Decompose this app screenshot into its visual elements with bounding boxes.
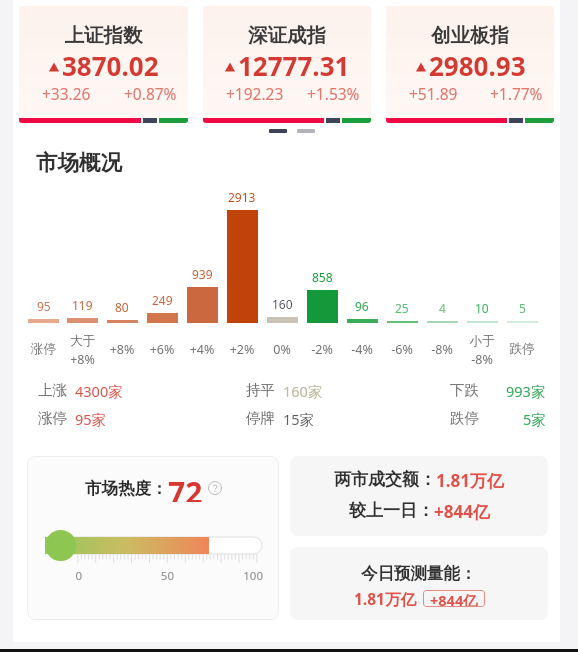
staticText: 0 bbox=[27, 568, 82, 584]
staticText: 小于 -8% bbox=[462, 333, 502, 365]
staticText: 大于 +8% bbox=[63, 333, 102, 365]
staticText: 249 bbox=[152, 292, 173, 308]
staticText: 25 bbox=[395, 300, 409, 316]
staticText: 5家 bbox=[523, 409, 546, 429]
staticText: -8% bbox=[422, 341, 462, 358]
staticText: 今日预测量能： bbox=[361, 563, 477, 584]
staticText: 160家 bbox=[283, 381, 323, 401]
staticText: 5 bbox=[519, 300, 526, 316]
staticText: 2913 bbox=[228, 189, 256, 205]
staticText: -6% bbox=[382, 341, 422, 358]
staticText: 12777.31 bbox=[238, 48, 350, 83]
staticText: 939 bbox=[192, 266, 213, 282]
staticText: 72 bbox=[168, 472, 203, 502]
staticText: +6% bbox=[142, 341, 182, 358]
staticText: 50 bbox=[82, 568, 174, 584]
staticText: +51.89 bbox=[409, 83, 458, 104]
staticText: +1.77% bbox=[490, 83, 543, 104]
staticText: +33.26 bbox=[42, 83, 91, 104]
staticText: +8% bbox=[102, 341, 142, 358]
staticText: 市场概况 bbox=[36, 149, 122, 176]
staticText: +2% bbox=[222, 341, 262, 358]
staticText: 涨停 bbox=[24, 341, 63, 357]
staticText: 160 bbox=[272, 296, 293, 312]
staticText: 95 bbox=[37, 298, 51, 314]
staticText: 15家 bbox=[283, 409, 315, 429]
staticText: +4% bbox=[182, 341, 222, 358]
staticText: 993家 bbox=[506, 381, 546, 401]
staticText: 跌停 bbox=[450, 409, 479, 427]
staticText: 100 bbox=[174, 568, 263, 584]
staticText: 96 bbox=[355, 298, 369, 314]
staticText: +1.53% bbox=[307, 83, 360, 104]
staticText: 80 bbox=[115, 299, 129, 315]
staticText: 停牌 bbox=[246, 409, 275, 427]
staticText: 下跌 bbox=[450, 381, 479, 399]
staticText: 2980.93 bbox=[429, 48, 526, 83]
staticText: +844亿 bbox=[434, 500, 490, 523]
staticText: 上涨 bbox=[38, 381, 67, 399]
staticText: 上证指数 bbox=[19, 23, 188, 48]
staticText: 119 bbox=[72, 297, 93, 313]
staticText: +192.23 bbox=[226, 83, 284, 104]
staticText: 1.81万亿 bbox=[354, 588, 416, 609]
staticText: 创业板指 bbox=[386, 23, 554, 48]
button[interactable]: 市场热度： bbox=[27, 456, 279, 620]
staticText: +844亿 bbox=[430, 590, 478, 607]
staticText: 涨停 bbox=[38, 409, 67, 427]
button[interactable]: 深证成指 bbox=[203, 6, 371, 123]
staticText: 深证成指 bbox=[203, 23, 371, 48]
button[interactable]: 上证指数 bbox=[19, 6, 188, 123]
button[interactable]: 创业板指 bbox=[386, 6, 554, 123]
staticText: 较上一日： bbox=[349, 500, 434, 521]
staticText: -4% bbox=[342, 341, 382, 358]
staticText: 4 bbox=[439, 300, 446, 316]
staticText: 1.81万亿 bbox=[436, 469, 504, 492]
button[interactable]: 两市成交额： bbox=[290, 456, 548, 536]
staticText: 10 bbox=[475, 300, 489, 316]
staticText: 持平 bbox=[246, 381, 275, 399]
button[interactable]: 今日预测量能： bbox=[290, 547, 548, 620]
staticText: 95家 bbox=[75, 409, 107, 429]
staticText: 0% bbox=[262, 341, 302, 358]
staticText: -2% bbox=[302, 341, 342, 358]
staticText: 858 bbox=[312, 269, 333, 285]
staticText: 3870.02 bbox=[62, 48, 159, 83]
staticText: 4300家 bbox=[75, 381, 123, 401]
staticText: 市场热度： bbox=[85, 478, 168, 499]
staticText: 两市成交额： bbox=[334, 469, 436, 490]
staticText: +0.87% bbox=[124, 83, 177, 104]
staticText: 跌停 bbox=[502, 341, 542, 357]
